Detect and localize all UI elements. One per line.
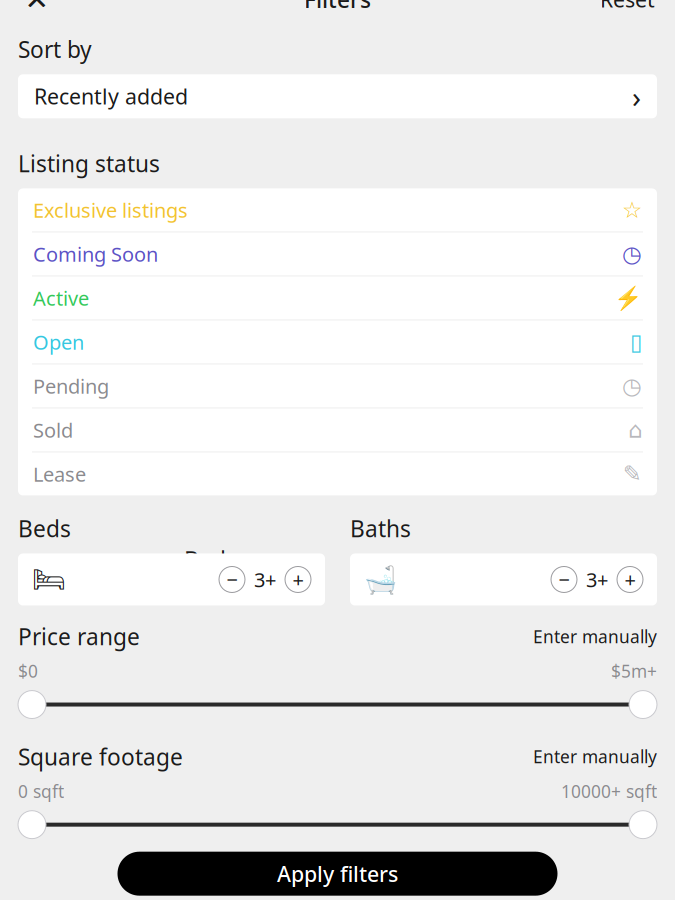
button[interactable]: Decrease: [219, 566, 245, 592]
staticText: ✎: [623, 461, 642, 487]
staticText: ›: [632, 77, 641, 116]
staticText: Exclusive listings: [33, 197, 188, 223]
button[interactable]: Exclusive listings: [18, 188, 657, 231]
button[interactable]: Coming Soon: [18, 232, 657, 275]
staticText: Beds: [18, 513, 71, 543]
staticText: Square footage: [18, 742, 183, 772]
staticText: Open: [33, 329, 84, 355]
button[interactable]: Active: [18, 276, 657, 319]
button[interactable]: Lease: [18, 452, 657, 495]
staticText: ⚡: [614, 285, 642, 311]
staticText: ⌂: [628, 417, 642, 443]
staticText: ◷: [622, 373, 642, 399]
staticText: 🛏: [32, 564, 66, 595]
button[interactable]: Maximum value: [629, 811, 657, 839]
staticText: Recently added: [34, 82, 188, 110]
button[interactable]: Sold: [18, 408, 657, 451]
staticText: Enter manually: [533, 745, 657, 768]
staticText: ✕: [24, 0, 49, 16]
staticText: Reset: [600, 0, 655, 13]
button[interactable]: Maximum value: [629, 691, 657, 719]
staticText: Pending: [33, 373, 109, 399]
staticText: Coming Soon: [33, 241, 158, 267]
staticText: 0 sqft: [18, 780, 64, 803]
staticText: −: [558, 566, 569, 593]
staticText: Sold: [33, 417, 73, 443]
staticText: Beds: [184, 544, 237, 574]
staticText: Filters: [304, 0, 371, 14]
staticText: Lease: [33, 461, 86, 487]
button[interactable]: Decrease: [551, 566, 577, 592]
staticText: +: [624, 566, 635, 593]
button[interactable]: Minimum value: [18, 811, 46, 839]
staticText: Active: [33, 285, 89, 311]
staticText: ◷: [622, 241, 642, 267]
staticText: Sort by: [18, 34, 92, 64]
button[interactable]: Increase: [617, 566, 643, 592]
staticText: ▯: [630, 329, 642, 355]
staticText: Listing status: [18, 148, 160, 178]
button[interactable]: Recently added: [18, 74, 657, 118]
staticText: 🛁: [364, 564, 397, 595]
staticText: $5m+: [611, 659, 657, 682]
staticText: +: [292, 566, 303, 593]
staticText: −: [226, 566, 237, 593]
staticText: 10000+ sqft: [561, 780, 657, 803]
staticText: $0: [18, 659, 38, 682]
button[interactable]: Close: [14, 0, 60, 22]
button[interactable]: Reset: [594, 0, 661, 22]
staticText: ☆: [622, 197, 642, 223]
button[interactable]: Minimum value: [18, 691, 46, 719]
button[interactable]: Increase: [285, 566, 311, 592]
button[interactable]: Apply filters: [117, 852, 557, 896]
staticText: 3+: [586, 566, 608, 593]
button[interactable]: Enter manually: [533, 625, 657, 648]
button[interactable]: Enter manually: [533, 745, 657, 768]
staticText: Price range: [18, 621, 140, 651]
staticText: Baths: [350, 513, 411, 543]
button[interactable]: Pending: [18, 364, 657, 407]
staticText: Apply filters: [277, 859, 398, 888]
staticText: Enter manually: [533, 625, 657, 648]
button[interactable]: Open: [18, 320, 657, 363]
staticText: 3+: [254, 566, 276, 593]
